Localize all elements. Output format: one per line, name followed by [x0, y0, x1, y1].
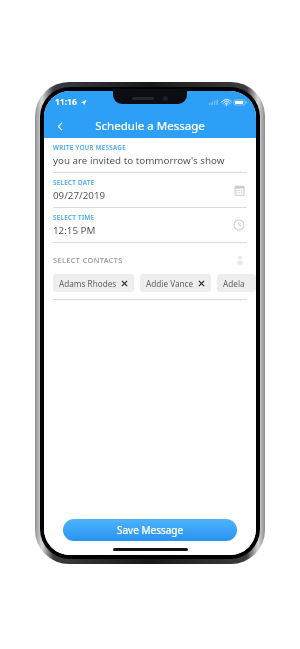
staticText: 12:15 PM [53, 224, 96, 237]
button[interactable]: SELECT CONTACTS [44, 253, 256, 267]
button[interactable]: Adela Mo [217, 274, 256, 292]
staticText: you are invited to tommorrow's show [53, 154, 225, 167]
staticText: SELECT TIME [53, 213, 95, 221]
button[interactable]: Back [49, 115, 71, 137]
button[interactable]: Adams Rhodes [53, 274, 134, 292]
button[interactable]: Addie Vance [140, 274, 211, 292]
staticText: 11:16 [55, 96, 77, 108]
button[interactable]: Pick time [231, 217, 247, 233]
button[interactable]: SELECT DATE [44, 173, 256, 207]
staticText: Addie Vance [146, 278, 194, 289]
button[interactable]: Pick date [231, 182, 247, 198]
staticText: WRITE YOUR MESSAGE [53, 143, 126, 151]
staticText: SELECT CONTACTS [53, 255, 123, 265]
button[interactable]: SELECT TIME [44, 208, 256, 242]
button[interactable]: Add contacts [233, 253, 247, 267]
staticText: Save Message [117, 523, 184, 537]
button[interactable]: WRITE YOUR MESSAGE [44, 143, 256, 172]
staticText: Schedule a Message [95, 118, 205, 134]
staticText: 09/27/2019 [53, 189, 106, 202]
staticText: Adela Mo [223, 278, 250, 289]
staticText: Adams Rhodes [59, 278, 117, 289]
staticText: SELECT DATE [53, 178, 95, 186]
button[interactable]: Save Message [63, 519, 237, 541]
